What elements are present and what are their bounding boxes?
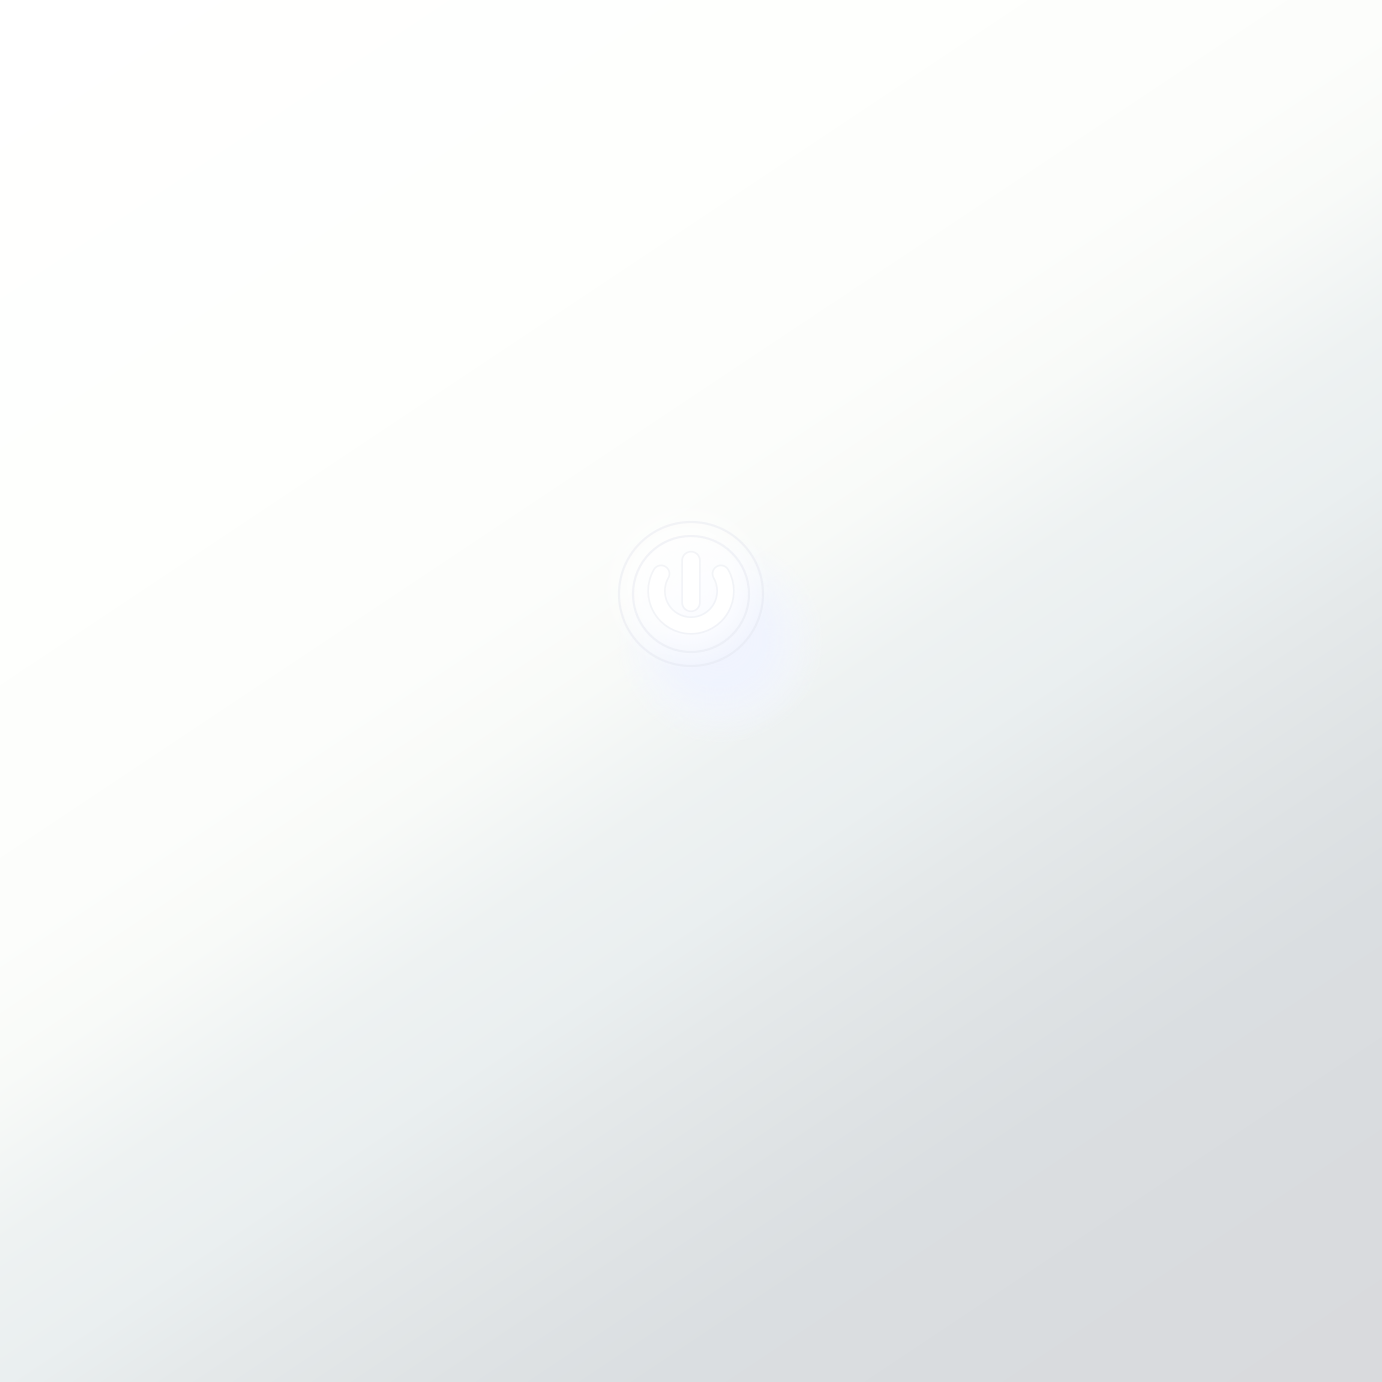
button[interactable]: Power	[615, 518, 767, 670]
